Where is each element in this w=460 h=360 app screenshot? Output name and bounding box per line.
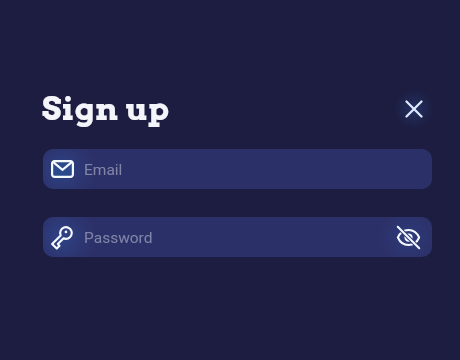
button[interactable]: Password <box>43 217 432 257</box>
staticText: Password <box>84 229 153 247</box>
button[interactable]: Show password <box>391 220 425 254</box>
staticText: Email <box>84 161 123 179</box>
button[interactable]: Email <box>43 149 432 189</box>
staticText: Sign up <box>42 89 170 128</box>
button[interactable]: Close <box>398 93 430 125</box>
